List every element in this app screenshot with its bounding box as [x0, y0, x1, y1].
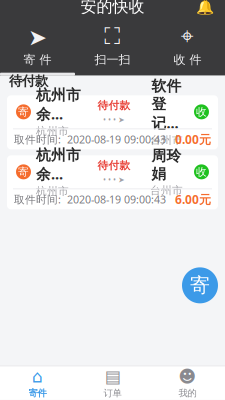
staticText: ▤	[104, 367, 120, 386]
staticText: 扫一扫	[94, 52, 130, 67]
staticText: 取件时间: 2020-08-19 09:00:43	[14, 132, 166, 146]
staticText: 杭州市	[36, 185, 69, 198]
button[interactable]: ▤	[75, 366, 150, 399]
staticText: 安的快收	[80, 0, 144, 16]
button[interactable]: 寄	[7, 155, 218, 209]
button[interactable]: 寄	[7, 95, 218, 149]
staticText: 寄	[190, 273, 210, 298]
staticText: 我的	[178, 387, 196, 399]
button[interactable]: ☻	[150, 366, 225, 399]
staticText: 取件时间: 2020-08-19 09:00:43	[14, 192, 166, 206]
staticText: 杭州市	[36, 125, 69, 138]
button[interactable]: ⌖	[150, 25, 225, 69]
staticText: ⛶	[104, 26, 120, 48]
staticText: 🔔	[196, 0, 214, 15]
staticText: 收 件	[173, 52, 201, 67]
staticText: 待付款	[97, 159, 130, 172]
staticText: 待付款	[97, 99, 130, 112]
button[interactable]: ⛶	[75, 25, 150, 69]
staticText: 杭州市余...	[36, 86, 81, 124]
staticText: 软件登记...	[151, 77, 181, 133]
staticText: ⌖	[181, 26, 194, 48]
staticText: 杭州市余...	[36, 146, 81, 184]
staticText: • • • ➤	[103, 174, 125, 185]
staticText: 寄	[18, 105, 29, 118]
button[interactable]: 通知	[193, 0, 217, 18]
staticText: 寄件	[28, 387, 46, 399]
button[interactable]: ⌂	[0, 366, 75, 399]
staticText: 0.00元	[175, 131, 211, 147]
staticText: 订单	[103, 387, 121, 399]
staticText: 收	[196, 165, 207, 178]
staticText: ⌂	[32, 367, 43, 386]
staticText: 6.00元	[175, 191, 211, 207]
staticText: 周玲娟	[151, 147, 181, 183]
staticText: 台州市	[150, 184, 183, 197]
staticText: • • • ➤	[103, 114, 125, 125]
button[interactable]: ➤	[0, 25, 75, 69]
staticText: 寄	[18, 165, 29, 178]
staticText: ➤	[28, 24, 47, 50]
staticText: 收	[196, 105, 207, 118]
staticText: 待付款	[9, 73, 48, 89]
staticText: 台州市	[150, 134, 183, 147]
button[interactable]: 寄件	[182, 267, 218, 303]
staticText: 寄 件	[23, 52, 51, 67]
staticText: ☻	[178, 367, 196, 386]
